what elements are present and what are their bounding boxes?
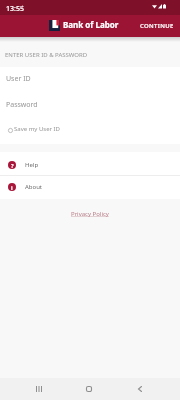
staticText: i [11, 184, 13, 191]
staticText: Bank of Labor [63, 19, 119, 30]
button[interactable]: Save my User ID [0, 122, 180, 136]
staticText: ENTER USER ID & PASSWORD [5, 51, 88, 59]
staticText: About [25, 183, 43, 191]
staticText: Save my User ID [14, 125, 60, 133]
staticText: ? [11, 162, 14, 169]
staticText: Privacy Policy [71, 210, 109, 218]
staticText: Password [6, 100, 38, 110]
staticText: User ID [6, 74, 31, 84]
button[interactable]: CONTINUE [134, 17, 180, 35]
button[interactable]: ? [0, 156, 180, 174]
button[interactable]: User ID [0, 67, 180, 91]
button[interactable]: Recent apps [29, 378, 49, 400]
button[interactable]: Password [0, 93, 180, 117]
staticText: Help [25, 161, 39, 169]
button[interactable]: Back [130, 378, 150, 400]
staticText: CONTINUE [140, 22, 174, 30]
button[interactable]: Home [79, 378, 99, 400]
staticText: 13:55 [6, 4, 24, 14]
button[interactable]: i [0, 178, 180, 196]
button[interactable]: Privacy Policy [65, 207, 115, 221]
